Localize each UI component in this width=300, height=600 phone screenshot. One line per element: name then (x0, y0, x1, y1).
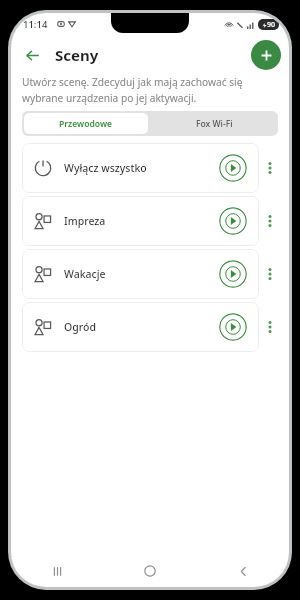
staticText: Przewodowe (59, 118, 113, 130)
button[interactable]: More options (259, 249, 281, 299)
staticText: Wakacje (64, 267, 106, 281)
button[interactable]: Przewodowe (24, 113, 148, 134)
button[interactable]: Activate scene (219, 313, 247, 341)
button[interactable]: Activate scene (219, 154, 247, 182)
button[interactable]: More options (259, 196, 281, 246)
button[interactable]: Impreza (22, 196, 259, 246)
button[interactable]: Home (130, 556, 170, 586)
staticText: 90 (267, 20, 276, 30)
staticText: Impreza (64, 214, 106, 228)
staticText: 11:14 (23, 18, 48, 31)
staticText: Utwórz scenę. Zdecyduj jak mają zachować… (22, 75, 243, 89)
button[interactable]: Wakacje (22, 249, 259, 299)
button[interactable]: Activate scene (219, 207, 247, 235)
button[interactable]: More options (259, 302, 281, 352)
button[interactable]: More options (259, 143, 281, 193)
button[interactable]: Back (223, 556, 263, 586)
staticText: wybrane urządzenia po jej aktywacji. (22, 91, 197, 105)
staticText: Sceny (55, 45, 99, 65)
button[interactable]: Back (17, 40, 47, 70)
button[interactable]: Wyłącz wszystko (22, 143, 259, 193)
button[interactable]: Ogród (22, 302, 259, 352)
staticText: Fox Wi-Fi (196, 118, 233, 130)
button[interactable]: Fox Wi-Fi (150, 111, 278, 136)
staticText: Wyłącz wszystko (64, 161, 147, 175)
staticText: Ogród (64, 320, 96, 334)
button[interactable]: Activate scene (219, 260, 247, 288)
button[interactable]: Recents (37, 556, 77, 586)
button[interactable]: Add scene (251, 40, 281, 70)
